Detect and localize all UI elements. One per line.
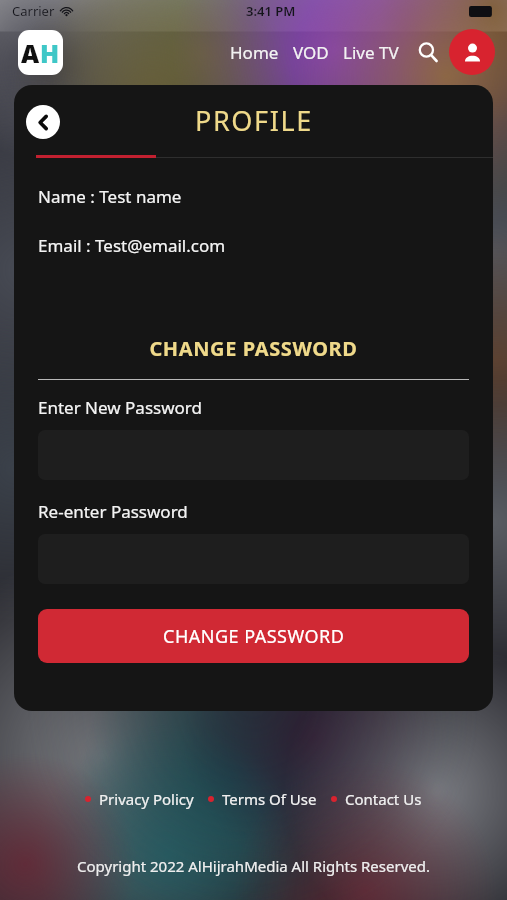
button[interactable]: Home bbox=[223, 35, 286, 70]
staticText: Privacy Policy bbox=[99, 789, 194, 809]
staticText: CHANGE PASSWORD bbox=[163, 624, 345, 649]
staticText: Home bbox=[230, 41, 279, 64]
button[interactable]: Search bbox=[411, 35, 445, 69]
staticText: 3:41 PM bbox=[246, 2, 296, 20]
staticText: PROFILE bbox=[195, 102, 313, 139]
staticText: H bbox=[40, 36, 60, 70]
staticText: VOD bbox=[293, 41, 329, 64]
staticText: Name : Test name bbox=[38, 185, 182, 208]
button[interactable]: VOD bbox=[286, 35, 336, 70]
button[interactable]: Back bbox=[26, 105, 60, 139]
staticText: Copyright 2022 AlHijrahMedia All Rights … bbox=[0, 856, 507, 876]
button[interactable]: Live TV bbox=[336, 35, 406, 70]
staticText: Email : Test@email.com bbox=[38, 234, 226, 257]
staticText: Carrier bbox=[12, 2, 55, 20]
staticText: Terms Of Use bbox=[222, 789, 317, 809]
staticText: Live TV bbox=[343, 41, 399, 64]
button[interactable]: Terms Of Use bbox=[222, 789, 317, 809]
button[interactable]: CHANGE PASSWORD bbox=[38, 609, 469, 663]
button[interactable]: Profile bbox=[449, 29, 495, 75]
button[interactable]: Privacy Policy bbox=[99, 789, 194, 809]
staticText: Enter New Password bbox=[38, 396, 202, 419]
button[interactable]: Contact Us bbox=[345, 789, 422, 809]
button[interactable]: AlHijrah home bbox=[18, 30, 63, 75]
staticText: Contact Us bbox=[345, 789, 422, 809]
staticText: Re-enter Password bbox=[38, 500, 188, 523]
staticText: CHANGE PASSWORD bbox=[14, 335, 493, 362]
staticText: A bbox=[21, 36, 40, 70]
